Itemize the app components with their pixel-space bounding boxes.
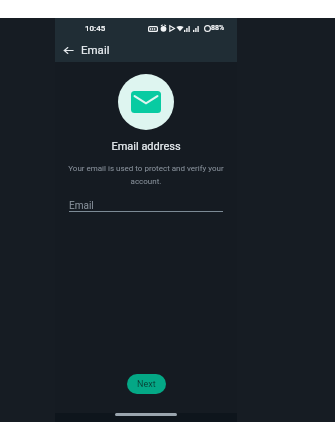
- staticText: 88%: [211, 24, 225, 32]
- staticText: 10:45: [85, 24, 106, 33]
- staticText: Your email is used to protect and verify…: [59, 164, 233, 185]
- staticText: Email: [69, 200, 94, 212]
- staticText: Email: [81, 43, 110, 56]
- staticText: Email address: [55, 140, 237, 153]
- button[interactable]: Back: [60, 42, 76, 58]
- button[interactable]: Next: [127, 374, 166, 394]
- staticText: Next: [137, 379, 156, 390]
